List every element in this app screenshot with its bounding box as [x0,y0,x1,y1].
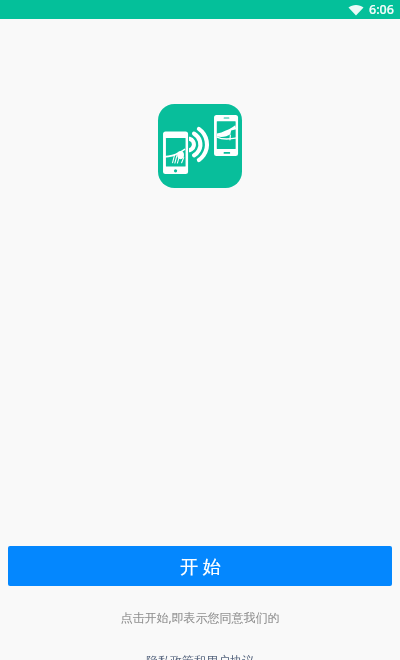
staticText: 点击开始,即表示您同意我们的 [120,609,280,625]
staticText: 6:06 [369,1,394,18]
other: Wi-Fi [348,4,364,16]
button[interactable]: 开 始 [8,546,392,586]
other: App logo [158,104,242,188]
staticText: 开 始 [180,554,221,579]
button[interactable]: 隐私政策和用户协议 [146,653,254,660]
